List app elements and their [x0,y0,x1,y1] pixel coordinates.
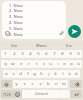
button[interactable]: ö [66,70,73,78]
staticText: c [31,81,34,87]
button[interactable]: j [45,70,52,78]
staticText: 5. Now [9,26,23,32]
staticText: i [57,61,59,67]
button[interactable]: Ins [55,41,82,49]
button[interactable]: Backspace [70,80,82,88]
staticText: 6. Now [9,32,23,38]
staticText: x [23,81,26,87]
button[interactable]: v [36,80,44,88]
button[interactable]: Deutsch [22,90,61,98]
staticText: 6 [45,51,48,57]
staticText: r [28,61,30,67]
staticText: f [27,71,29,77]
button[interactable]: f [24,70,31,78]
staticText: 1 [4,51,7,57]
staticText: 8 [61,51,64,57]
button[interactable]: 6 [42,50,50,58]
staticText: u [49,61,52,67]
staticText: Wenn [36,43,47,48]
staticText: . [65,91,67,97]
button[interactable]: l [59,70,66,78]
button[interactable]: 0 [74,50,82,58]
button[interactable]: s [10,70,17,78]
staticText: ü [77,61,80,67]
button[interactable]: 4 [26,50,34,58]
button[interactable]: 2 [10,50,18,58]
staticText: k [54,71,57,77]
button[interactable]: 1 [1,50,10,58]
staticText: ö [68,71,71,77]
staticText: y [15,81,18,87]
staticText: v [39,81,42,87]
button[interactable]: i [54,60,61,68]
button[interactable]: . [61,90,70,98]
button[interactable]: 9 [66,50,74,58]
button[interactable]: Enter [70,90,82,98]
staticText: s [12,71,15,77]
button[interactable]: Send [68,25,81,38]
button[interactable]: k [52,70,59,78]
staticText: g [33,71,36,77]
button[interactable]: ?123 [1,90,13,98]
staticText: a [5,71,8,77]
button[interactable]: q [1,60,9,68]
button[interactable]: d [17,70,24,78]
staticText: 7 [53,51,56,57]
staticText: 2 [13,51,16,57]
button[interactable]: ü [75,60,82,68]
staticText: 2. Now [9,8,23,14]
staticText: 4. Now [9,20,23,26]
button[interactable]: c [28,80,36,88]
staticText: e [20,61,23,67]
button[interactable]: g [31,70,38,78]
staticText: t [36,61,38,67]
staticText: ä [75,71,78,77]
staticText: o [63,61,66,67]
button[interactable]: 7 [50,50,58,58]
staticText: 1. Now [9,3,23,8]
staticText: p [70,61,73,67]
button[interactable]: z [40,60,47,68]
button[interactable]: m [60,80,68,88]
button[interactable]: t [33,60,40,68]
button[interactable]: Shift [1,80,12,88]
staticText: q [4,61,7,67]
staticText: Die [11,43,18,48]
button[interactable]: Wenn [28,41,55,49]
staticText: m [62,81,66,87]
button[interactable]: n [52,80,60,88]
button[interactable]: p [68,60,75,68]
button[interactable]: w [9,60,17,68]
button[interactable]: 5 [34,50,42,58]
staticText: 3 [21,51,24,57]
staticText: 4 [29,51,32,57]
staticText: b [47,81,50,87]
button[interactable]: e [17,60,25,68]
button[interactable]: y [13,80,20,88]
button[interactable]: b [44,80,52,88]
staticText: h [40,71,43,77]
button[interactable]: Emoji [4,30,11,37]
staticText: d [19,71,22,77]
button[interactable]: x [20,80,28,88]
button[interactable]: 3 [18,50,26,58]
staticText: 3. Now [9,14,23,20]
staticText: j [48,71,50,77]
staticText: w [11,61,15,67]
staticText: 9 [69,51,72,57]
button[interactable]: Attach [58,30,65,37]
button[interactable]: r [25,60,33,68]
button[interactable]: 1. Now [2,1,66,39]
button[interactable]: Emoji [13,90,22,98]
button[interactable]: o [61,60,68,68]
button[interactable]: Die [1,41,28,49]
staticText: z [43,61,45,67]
button[interactable]: h [38,70,45,78]
staticText: 5 [37,51,40,57]
button[interactable]: a [3,70,10,78]
button[interactable]: ä [73,70,80,78]
staticText: 0 [77,51,80,57]
button[interactable]: u [47,60,54,68]
staticText: Ins [66,43,72,48]
button[interactable]: 8 [58,50,66,58]
